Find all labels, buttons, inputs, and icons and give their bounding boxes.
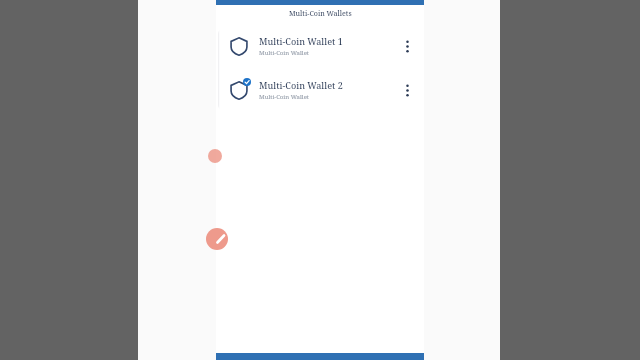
- button[interactable]: Edit: [206, 228, 228, 250]
- staticText: Multi-Coin Wallets: [289, 9, 352, 19]
- button[interactable]: Multi-Coin Wallet 2: [218, 72, 424, 108]
- button[interactable]: Multi-Coin Wallet 1: [218, 28, 424, 64]
- button[interactable]: Action: [208, 149, 222, 163]
- button[interactable]: More options: [398, 31, 416, 61]
- staticText: Multi-Coin Wallet: [259, 49, 309, 57]
- button[interactable]: More options: [398, 75, 416, 105]
- staticText: Multi-Coin Wallet 1: [259, 35, 343, 47]
- staticText: Multi-Coin Wallet 2: [259, 79, 343, 91]
- staticText: Multi-Coin Wallet: [259, 93, 309, 101]
